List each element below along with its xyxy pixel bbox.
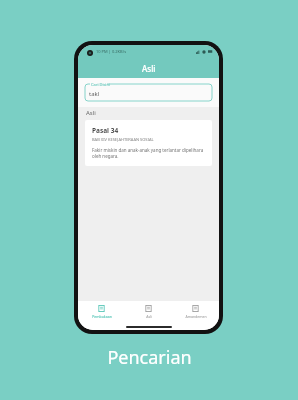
other: Pembukaan [98, 305, 105, 312]
staticText: BAB XIV KESEJAHTERAAN SOSIAL [92, 137, 154, 142]
staticText: Asli [86, 109, 96, 117]
button[interactable]: Pembukaan [78, 301, 125, 323]
other: Asli [145, 305, 152, 312]
other: Amandemen [192, 305, 199, 312]
staticText: 10 PM | 0.2KB/s [96, 49, 127, 54]
staticText: Asli [142, 63, 156, 74]
button[interactable]: Pasal 34 [85, 120, 212, 166]
button[interactable]: Asli [125, 301, 172, 323]
staticText: Pencarian [107, 345, 192, 370]
button[interactable]: Cari Disini [85, 84, 212, 101]
staticText: Pembukaan [92, 314, 112, 319]
staticText: Fakir miskin dan anak-anak yang terlanta… [92, 147, 205, 160]
staticText: Amandemen [185, 314, 207, 319]
staticText: Cari Disini [91, 82, 110, 87]
staticText: Pasal 34 [92, 126, 119, 135]
staticText: takl [89, 90, 100, 98]
button[interactable]: Amandemen [172, 301, 219, 323]
staticText: Asli [146, 314, 152, 319]
